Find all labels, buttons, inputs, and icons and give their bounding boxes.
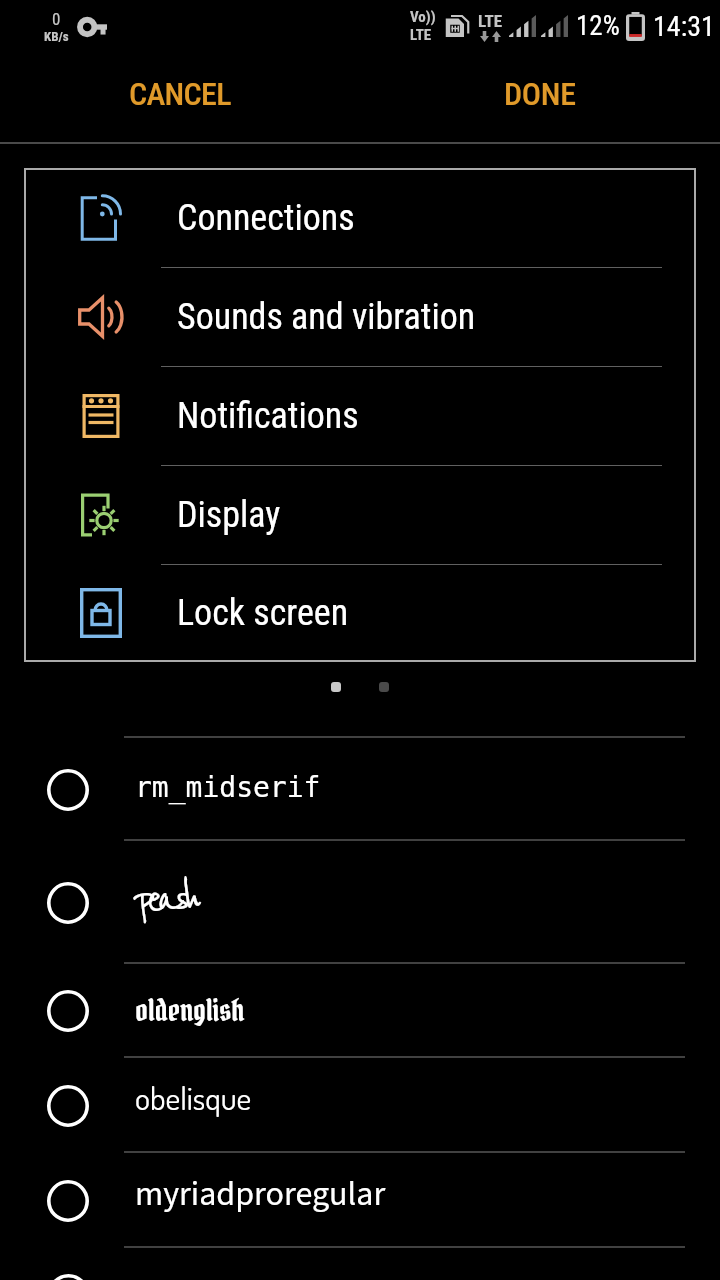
staticText: LTE [478, 11, 502, 31]
staticText: 0 [52, 9, 61, 29]
staticText: CANCEL [129, 75, 231, 113]
button[interactable]: DONE [360, 49, 720, 138]
button[interactable]: CANCEL [0, 49, 360, 138]
button[interactable]: oldenglish [0, 964, 720, 1058]
button[interactable]: Display [24, 465, 696, 564]
staticText: 14:31 [653, 10, 715, 43]
button[interactable]: obelisque [0, 1058, 720, 1153]
button[interactable]: rm_midserif [0, 738, 720, 841]
staticText: KB/s [44, 29, 69, 44]
button[interactable]: Sounds and vibration [24, 267, 696, 366]
other: VPN active [79, 18, 107, 36]
staticText: Sounds and vibration [177, 296, 476, 338]
staticText: oldenglish [135, 991, 245, 1030]
staticText: rm_midserif [135, 771, 321, 804]
staticText: peash [135, 872, 194, 925]
staticText: Vo)) [410, 8, 436, 26]
button[interactable] [45, 1274, 92, 1280]
staticText: LTE [410, 26, 432, 44]
button[interactable]: Lock screen [24, 564, 696, 662]
staticText: DONE [504, 75, 576, 113]
staticText: Display [177, 494, 281, 536]
staticText: Notifications [177, 395, 359, 437]
staticText: obelisque [135, 1077, 252, 1117]
button[interactable]: Notifications [24, 366, 696, 465]
button[interactable]: Connections [24, 168, 696, 267]
staticText: 12% [576, 10, 620, 42]
staticText: myriadproregular [135, 1170, 386, 1218]
button[interactable]: peash [0, 841, 720, 964]
button[interactable]: myriadproregular [0, 1153, 720, 1248]
staticText: Connections [177, 197, 355, 239]
staticText: Lock screen [177, 592, 349, 634]
